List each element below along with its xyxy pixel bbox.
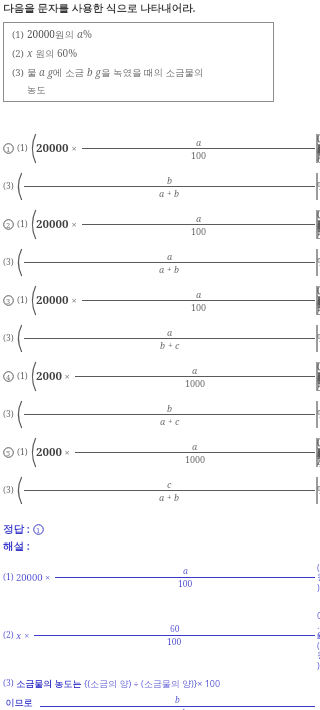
staticText: x — [16, 629, 22, 642]
staticText: 20000 × — [16, 571, 53, 584]
staticText: (1) — [17, 142, 30, 154]
staticText: (1) — [17, 446, 30, 458]
staticText: + — [165, 491, 174, 502]
staticText: × — [62, 446, 73, 459]
staticText: 2000 — [36, 368, 62, 384]
staticText: 100 — [191, 301, 207, 313]
staticText: (1) — [12, 28, 27, 41]
staticText: (2) — [12, 47, 27, 60]
staticText: (1) — [3, 571, 16, 583]
staticText: 20000 — [36, 140, 69, 156]
staticText: 100 — [178, 578, 193, 590]
staticText: a — [183, 565, 188, 577]
staticText: 5 — [6, 448, 11, 458]
staticText: × — [69, 142, 80, 155]
staticText: (3) — [12, 66, 27, 79]
staticText: c — [167, 478, 172, 490]
staticText: 원의 — [33, 47, 57, 60]
staticText: a — [159, 263, 165, 275]
staticText: + — [165, 263, 174, 274]
staticText: × — [69, 294, 80, 307]
staticText: b — [167, 174, 173, 186]
staticText: 100 — [191, 225, 207, 237]
staticText: 100 — [191, 149, 207, 161]
staticText: × — [69, 218, 80, 231]
staticText: (1) — [17, 370, 30, 382]
staticText: a — [159, 187, 165, 199]
staticText: 4 — [6, 372, 11, 382]
staticText: (3) — [3, 256, 16, 268]
staticText: c — [175, 339, 180, 351]
staticText: (3) — [3, 180, 16, 192]
staticText: + — [165, 187, 174, 198]
staticText: 20000 — [36, 216, 69, 232]
staticText: (3) — [3, 677, 16, 689]
staticText: b — [182, 707, 187, 710]
staticText: b g — [87, 65, 101, 79]
staticText: 2 — [6, 220, 11, 230]
staticText: 소금물의 농도는 — [16, 677, 84, 689]
staticText: 이므로 — [3, 696, 38, 708]
staticText: 해설 : — [3, 539, 30, 553]
staticText: 1 — [6, 144, 11, 154]
staticText: × — [62, 370, 73, 383]
staticText: 1000 — [185, 377, 206, 389]
staticText: 20000 — [36, 292, 69, 308]
staticText: (1) — [17, 218, 30, 230]
staticText: a — [192, 364, 198, 376]
staticText: 다음을 문자를 사용한 식으로 나타내어라. — [3, 1, 196, 15]
staticText: (3) — [3, 408, 16, 420]
staticText: 농도 — [12, 83, 46, 96]
staticText: % — [83, 27, 92, 41]
staticText: a g — [39, 65, 53, 79]
staticText: 100 — [167, 636, 182, 648]
staticText: 1000 — [185, 453, 206, 465]
staticText: b — [174, 187, 180, 199]
staticText: 20000 — [27, 27, 55, 41]
staticText: 원의 — [55, 28, 77, 41]
staticText: b — [167, 402, 173, 414]
staticText: b — [175, 694, 180, 706]
staticText: a — [196, 288, 202, 300]
staticText: a — [196, 136, 202, 148]
staticText: b — [174, 263, 180, 275]
staticText: (1) — [17, 294, 30, 306]
staticText: (3) — [3, 332, 16, 344]
staticText: a — [77, 27, 83, 41]
staticText: b — [174, 491, 180, 503]
staticText: 에 소금 — [53, 66, 87, 79]
staticText: a — [167, 250, 173, 262]
staticText: 정답 : — [3, 522, 33, 536]
staticText: 을 녹였을 때의 소금물의 — [101, 66, 204, 79]
staticText: a — [159, 491, 165, 503]
staticText: a — [160, 415, 166, 427]
staticText: c — [175, 415, 180, 427]
staticText: 60 — [170, 623, 180, 635]
staticText: + — [166, 415, 175, 426]
staticText: + — [166, 339, 175, 350]
staticText: a — [192, 440, 198, 452]
staticText: 물 — [27, 66, 39, 79]
staticText: 3 — [6, 296, 11, 306]
staticText: 2000 — [36, 444, 62, 460]
staticText: a — [196, 212, 202, 224]
staticText: × — [22, 629, 32, 641]
staticText: {(소금의 양) ÷ (소금물의 양)}× 100 — [84, 677, 221, 689]
staticText: a — [167, 326, 173, 338]
staticText: 1 — [36, 525, 41, 535]
staticText: b — [160, 339, 166, 351]
staticText: 60% — [57, 46, 78, 60]
staticText: (2) — [3, 629, 16, 641]
staticText: x — [27, 46, 33, 60]
staticText: (3) — [3, 484, 16, 496]
